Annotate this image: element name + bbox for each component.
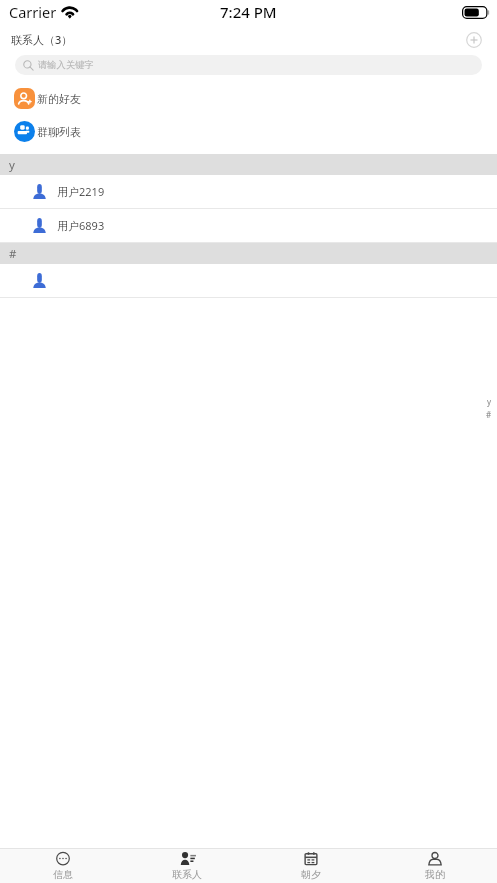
staticText: 新的好友: [37, 92, 81, 106]
button[interactable]: 用户2219: [0, 175, 497, 208]
staticText: #: [9, 246, 17, 262]
staticText: Carrier: [9, 2, 57, 22]
button[interactable]: 联系人: [125, 849, 249, 883]
staticText: #: [486, 409, 492, 420]
button[interactable]: 朝夕: [249, 849, 373, 883]
button[interactable]: 群聊列表: [0, 115, 497, 148]
staticText: 用户2219: [57, 184, 105, 199]
staticText: 联系人: [172, 868, 202, 881]
staticText: 联系人（3）: [11, 32, 73, 47]
staticText: 7:24 PM: [220, 2, 277, 22]
staticText: 用户6893: [57, 218, 105, 233]
button[interactable]: 信息: [0, 849, 125, 883]
button[interactable]: 请输入关键字: [15, 55, 482, 75]
staticText: 请输入关键字: [38, 59, 94, 71]
staticText: y: [9, 157, 15, 173]
button[interactable]: 用户6893: [0, 209, 497, 242]
button[interactable]: 新的好友: [0, 82, 497, 115]
staticText: 我的: [425, 868, 445, 881]
staticText: 信息: [53, 868, 73, 881]
button[interactable]: Add contact: [465, 31, 483, 49]
staticText: 朝夕: [301, 868, 321, 881]
button[interactable]: [0, 264, 497, 297]
button[interactable]: 我的: [373, 849, 497, 883]
staticText: y: [487, 396, 492, 407]
staticText: 群聊列表: [37, 125, 81, 139]
